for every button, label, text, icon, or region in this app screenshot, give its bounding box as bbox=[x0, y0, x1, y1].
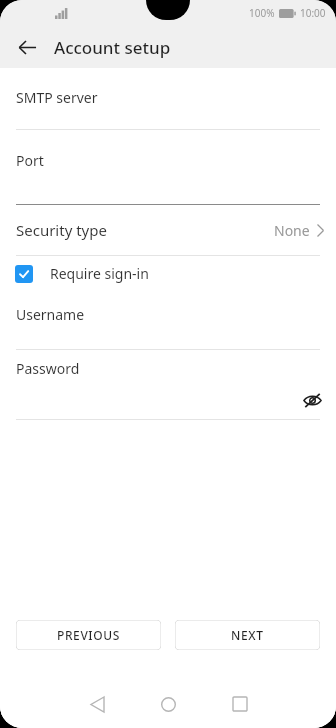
button[interactable]: PREVIOUS bbox=[16, 620, 161, 650]
button[interactable]: Back bbox=[80, 687, 114, 721]
staticText: 10:00 bbox=[300, 6, 326, 20]
button[interactable]: Security type bbox=[0, 205, 336, 255]
button[interactable]: SMTP server bbox=[0, 68, 336, 129]
staticText: Account setup bbox=[54, 36, 171, 59]
staticText: Security type bbox=[16, 220, 107, 240]
staticText: PREVIOUS bbox=[57, 627, 120, 643]
button[interactable]: NEXT bbox=[175, 620, 320, 650]
button[interactable]: Show password bbox=[297, 385, 327, 415]
button[interactable]: Recents bbox=[223, 687, 257, 721]
staticText: NEXT bbox=[231, 627, 264, 643]
staticText: Port bbox=[16, 151, 44, 170]
staticText: 100% bbox=[249, 6, 275, 20]
button[interactable]: Back bbox=[8, 28, 46, 66]
button[interactable]: Require sign-in bbox=[0, 256, 336, 291]
button[interactable]: Home bbox=[151, 687, 185, 721]
staticText: SMTP server bbox=[16, 88, 98, 107]
staticText: Password bbox=[16, 359, 80, 378]
staticText: Username bbox=[16, 305, 85, 324]
button[interactable]: Username bbox=[0, 291, 336, 349]
button[interactable]: Port bbox=[0, 130, 336, 204]
staticText: None bbox=[274, 221, 310, 240]
staticText: Require sign-in bbox=[50, 264, 149, 283]
